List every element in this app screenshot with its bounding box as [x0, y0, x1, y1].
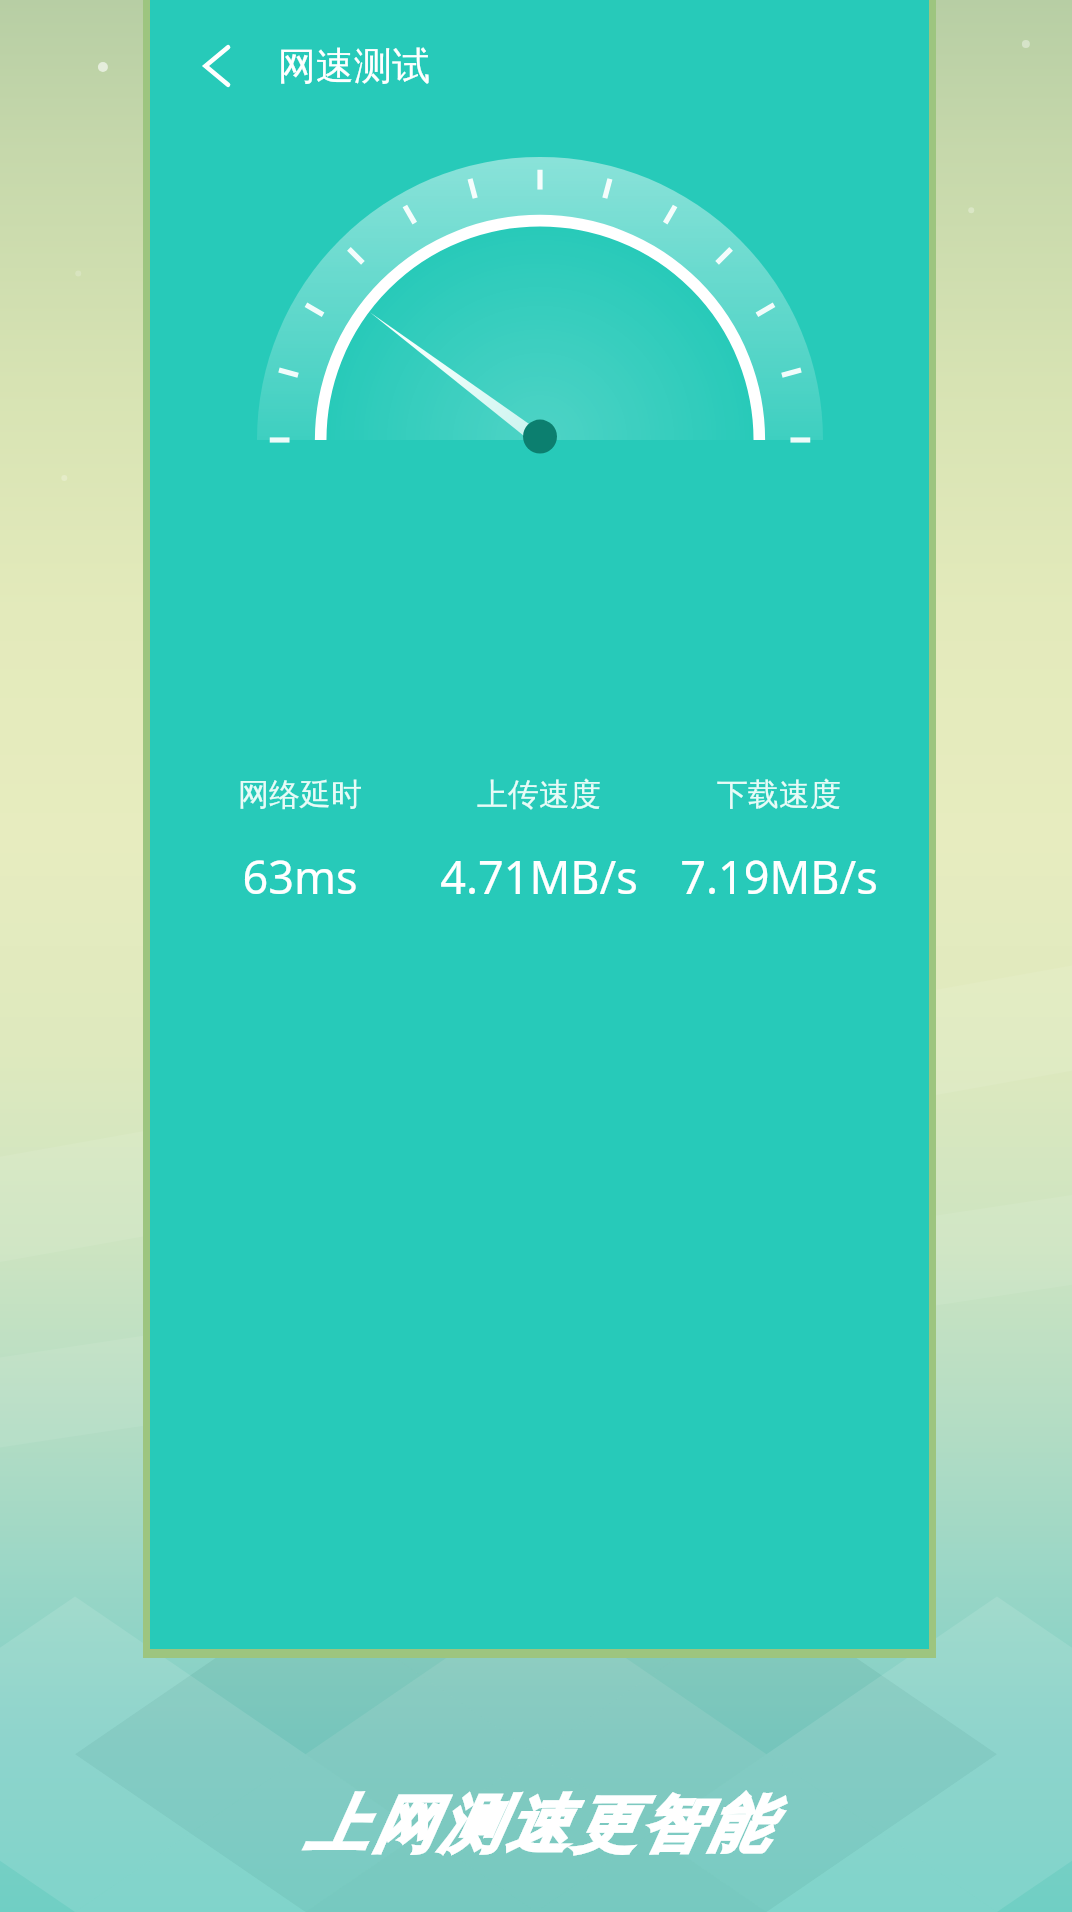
- staticText: 网络延时: [238, 775, 362, 814]
- button[interactable]: 网络延时: [180, 775, 419, 907]
- staticText: 下载速度: [717, 775, 841, 814]
- staticText: 网速测试: [278, 42, 430, 90]
- staticText: 63ms: [242, 846, 358, 907]
- staticText: 4.71MB/s: [440, 846, 638, 907]
- button[interactable]: 上传速度: [419, 775, 659, 907]
- staticText: 上网测速更智能: [302, 1786, 771, 1864]
- button[interactable]: Back: [178, 27, 256, 105]
- staticText: 7.19MB/s: [680, 846, 878, 907]
- staticText: 上传速度: [477, 775, 601, 814]
- button[interactable]: 下载速度: [659, 775, 899, 907]
